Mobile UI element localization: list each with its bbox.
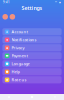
button[interactable]: Rate us <box>2 76 62 83</box>
button[interactable]: Payment <box>2 52 62 59</box>
staticText: Settings <box>21 4 42 12</box>
button[interactable]: Profile <box>2 14 8 20</box>
staticText: 9:41 <box>3 0 10 4</box>
staticText: Language <box>12 61 30 66</box>
staticText: Payment <box>12 53 29 58</box>
staticText: Notifications <box>12 37 37 42</box>
button[interactable]: Account <box>2 28 62 35</box>
button[interactable]: Explore <box>26 94 38 100</box>
button[interactable]: Notifications <box>2 36 62 43</box>
staticText: Privacy <box>12 45 25 50</box>
button[interactable]: Second profile <box>10 14 15 20</box>
staticText: Account <box>12 29 29 34</box>
staticText: Help <box>12 69 20 74</box>
button[interactable]: Language <box>2 60 62 67</box>
button[interactable]: Help <box>2 68 62 75</box>
button[interactable]: Privacy <box>2 44 62 51</box>
staticText: •• ▪ <box>55 0 61 4</box>
staticText: Rate us <box>12 77 27 82</box>
